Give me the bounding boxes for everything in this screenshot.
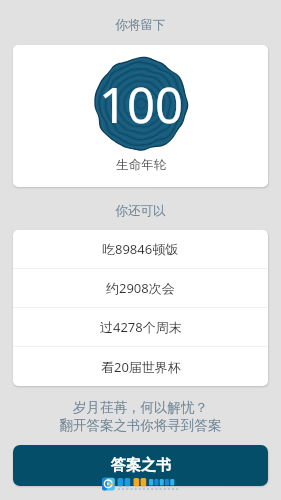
- button[interactable]: 答案之书: [13, 445, 268, 486]
- staticText: 岁月荏苒，何以解忧？ 翻开答案之书你将寻到答案: [0, 399, 281, 434]
- staticText: 看20届世界杯: [101, 358, 181, 376]
- staticText: 吃89846顿饭: [102, 240, 179, 258]
- staticText: 过4278个周末: [100, 318, 182, 336]
- staticText: 答案之书: [111, 456, 171, 475]
- staticText: 生命年轮: [116, 157, 166, 173]
- staticText: 100: [99, 71, 184, 138]
- button[interactable]: 约2908次会: [13, 269, 268, 307]
- button[interactable]: 看20届世界杯: [13, 347, 268, 386]
- staticText: 约2908次会: [106, 279, 175, 297]
- button[interactable]: 过4278个周末: [13, 308, 268, 346]
- button[interactable]: 吃89846顿饭: [13, 230, 268, 268]
- staticText: 你还可以: [0, 203, 281, 219]
- staticText: 你将留下: [0, 17, 281, 33]
